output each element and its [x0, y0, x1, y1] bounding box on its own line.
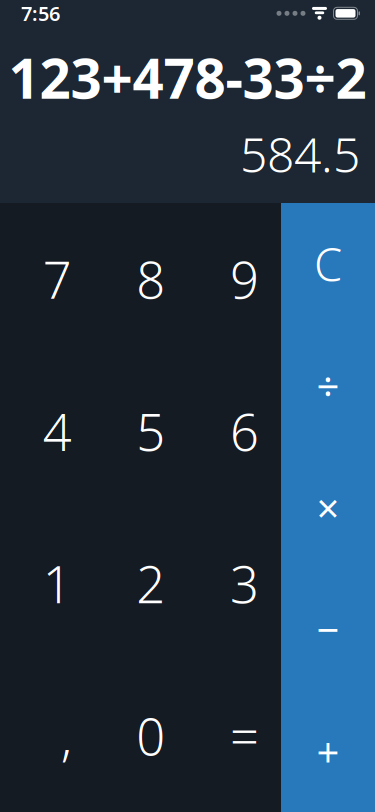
button[interactable]: 8 — [94, 203, 187, 355]
button[interactable]: = — [187, 660, 281, 812]
staticText: 6 — [230, 398, 259, 465]
staticText: 5 — [136, 398, 165, 465]
button[interactable]: 1 — [0, 507, 94, 660]
button[interactable]: Subtract — [281, 568, 375, 690]
staticText: 8 — [136, 245, 165, 313]
staticText: 4 — [43, 398, 72, 465]
staticText: , — [61, 702, 72, 769]
staticText: ÷ — [316, 359, 339, 412]
button[interactable]: Divide — [281, 325, 375, 447]
button[interactable]: 9 — [187, 203, 281, 355]
staticText: 1 — [43, 550, 72, 617]
button[interactable]: , — [0, 660, 94, 812]
button[interactable]: 5 — [94, 355, 187, 507]
button[interactable]: Multiply — [281, 447, 375, 568]
staticText: 123+478-33÷2 — [8, 41, 366, 114]
staticText: + — [316, 724, 339, 778]
staticText: 2 — [136, 550, 165, 617]
button[interactable]: Add — [281, 690, 375, 812]
button[interactable]: 7 — [0, 203, 94, 355]
staticText: 7 — [43, 245, 72, 313]
staticText: × — [316, 481, 339, 534]
button[interactable]: 3 — [187, 507, 281, 660]
staticText: = — [230, 702, 259, 769]
button[interactable]: 6 — [187, 355, 281, 507]
staticText: 0 — [136, 702, 165, 769]
button[interactable]: 4 — [0, 355, 94, 507]
staticText: 9 — [230, 245, 259, 313]
staticText: 584.5 — [240, 122, 360, 186]
button[interactable]: 0 — [94, 660, 187, 812]
button[interactable]: 2 — [94, 507, 187, 660]
button[interactable]: Clear — [281, 203, 375, 325]
staticText: 7:56 — [21, 0, 60, 27]
staticText: − — [316, 603, 339, 656]
staticText: 3 — [230, 550, 259, 617]
staticText: C — [314, 234, 342, 294]
